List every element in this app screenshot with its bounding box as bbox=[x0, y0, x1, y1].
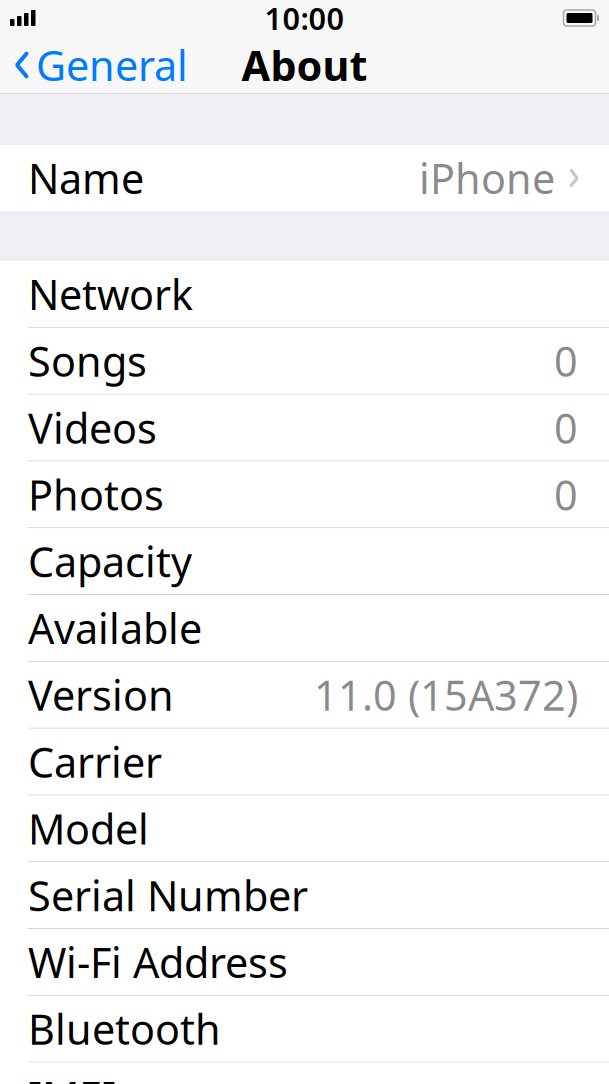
staticText: Videos bbox=[28, 400, 157, 455]
staticText: 0 bbox=[554, 467, 578, 522]
staticText: 11.0 (15A372) bbox=[314, 667, 578, 722]
button[interactable]: Network bbox=[0, 261, 609, 327]
button[interactable]: Carrier bbox=[0, 729, 609, 795]
staticText: Bluetooth bbox=[28, 1001, 221, 1056]
staticText: 10:00 bbox=[264, 0, 344, 38]
button[interactable]: General bbox=[0, 36, 202, 94]
staticText: Model bbox=[28, 801, 149, 856]
staticText: Capacity bbox=[28, 534, 192, 589]
staticText: Version bbox=[28, 667, 174, 722]
button[interactable]: Model bbox=[0, 795, 609, 861]
staticText: Songs bbox=[28, 333, 147, 388]
staticText: 0 bbox=[554, 333, 578, 388]
button[interactable]: IMEI bbox=[0, 1063, 609, 1084]
button[interactable]: Songs bbox=[0, 328, 609, 394]
button[interactable]: Available bbox=[0, 595, 609, 661]
button[interactable]: Version bbox=[0, 662, 609, 728]
staticText: 0 bbox=[554, 400, 578, 455]
staticText: Available bbox=[28, 601, 202, 655]
staticText: IMEI bbox=[28, 1068, 116, 1084]
staticText: iPhone bbox=[419, 151, 555, 205]
button[interactable]: Photos bbox=[0, 461, 609, 527]
button[interactable]: Videos bbox=[0, 395, 609, 461]
staticText: Photos bbox=[28, 467, 164, 522]
button[interactable]: Bluetooth bbox=[0, 996, 609, 1062]
button[interactable]: Name bbox=[0, 145, 609, 211]
staticText: Name bbox=[28, 151, 144, 205]
staticText: Carrier bbox=[28, 734, 162, 789]
staticText: General bbox=[36, 38, 188, 92]
button[interactable]: Serial Number bbox=[0, 862, 609, 928]
staticText: Network bbox=[28, 267, 193, 321]
staticText: Serial Number bbox=[28, 868, 308, 923]
button[interactable]: Capacity bbox=[0, 528, 609, 594]
staticText: About bbox=[241, 38, 367, 92]
staticText: Wi-Fi Address bbox=[28, 935, 288, 989]
button[interactable]: Wi-Fi Address bbox=[0, 929, 609, 995]
